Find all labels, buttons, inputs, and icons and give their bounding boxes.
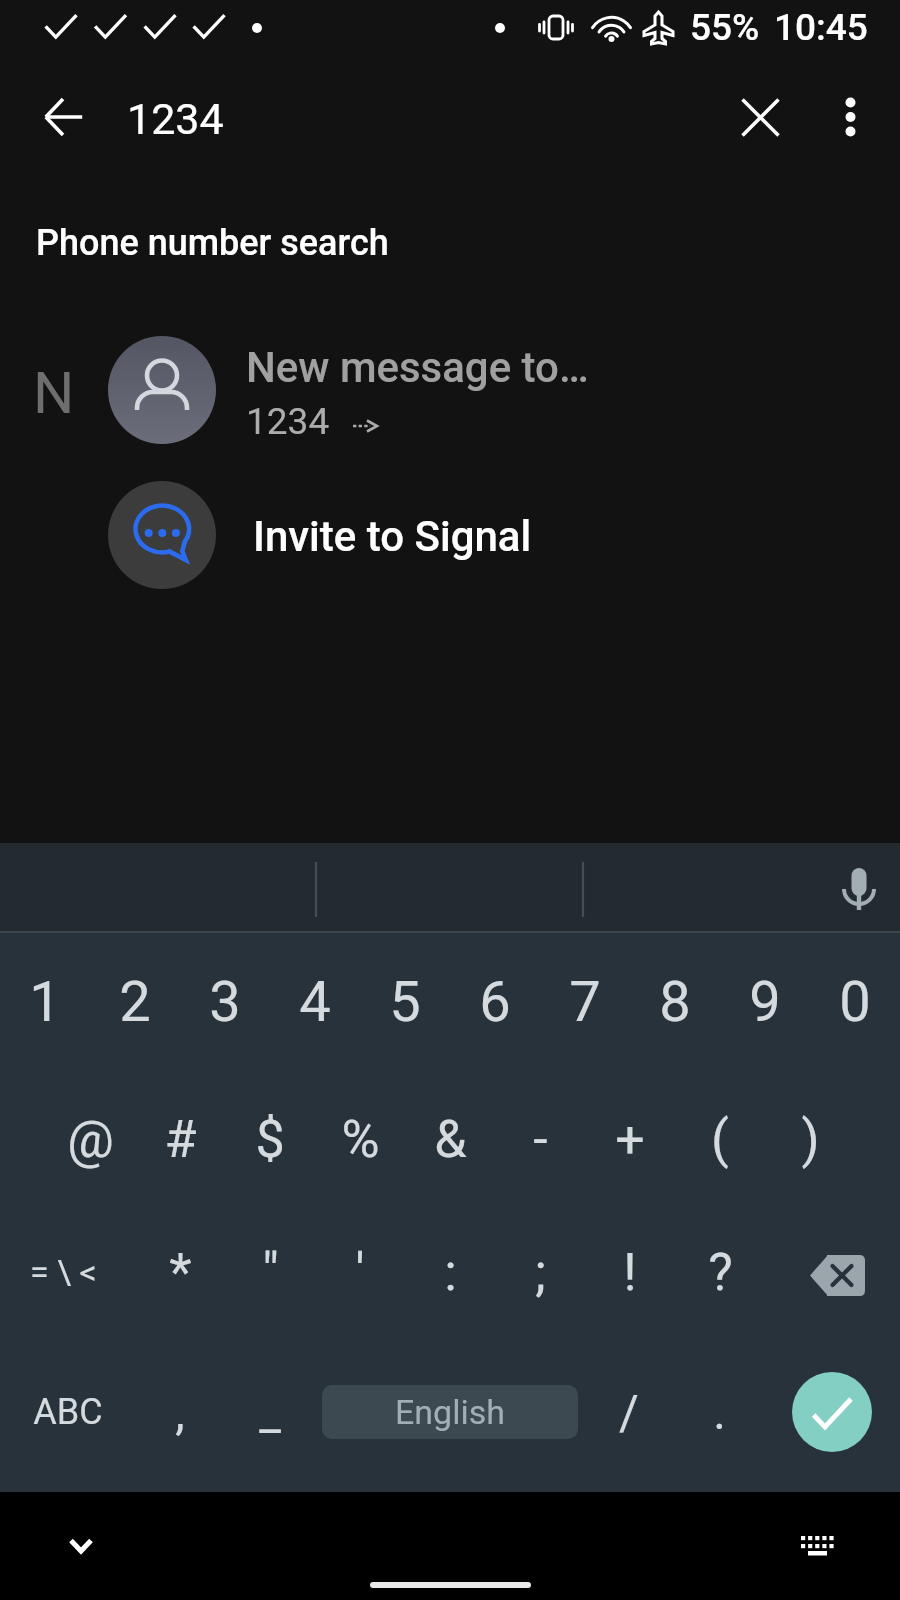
staticText: & bbox=[434, 1109, 467, 1170]
staticText: / bbox=[619, 1384, 639, 1440]
staticText: 0 bbox=[839, 969, 871, 1035]
staticText: 9 bbox=[749, 969, 781, 1035]
staticText: 8 bbox=[659, 969, 691, 1035]
button[interactable]: . bbox=[674, 1368, 764, 1456]
button[interactable]: 2 bbox=[90, 958, 180, 1046]
staticText: 1 bbox=[29, 969, 61, 1035]
button[interactable]: Switch keyboard bbox=[782, 1510, 854, 1582]
button[interactable]: ( bbox=[675, 1095, 765, 1183]
staticText: 1234 bbox=[127, 94, 224, 144]
staticText: % bbox=[341, 1109, 380, 1170]
button[interactable]: , bbox=[135, 1368, 225, 1456]
button[interactable]: Voice input bbox=[827, 856, 891, 920]
button[interactable]: ABC bbox=[23, 1368, 113, 1456]
staticText: * bbox=[169, 1242, 192, 1303]
button[interactable]: Enter bbox=[792, 1372, 872, 1452]
button[interactable]: N bbox=[0, 336, 900, 444]
staticText: Invite to Signal bbox=[253, 512, 532, 561]
staticText: $ bbox=[255, 1109, 285, 1170]
button[interactable]: ' bbox=[315, 1228, 405, 1316]
staticText: ; bbox=[535, 1242, 546, 1303]
button[interactable]: 1 bbox=[0, 958, 90, 1046]
button[interactable]: - bbox=[495, 1095, 585, 1183]
button[interactable]: 3 bbox=[180, 958, 270, 1046]
button[interactable]: & bbox=[405, 1095, 495, 1183]
button[interactable]: 4 bbox=[270, 958, 360, 1046]
staticText: ! bbox=[623, 1242, 637, 1303]
staticText: . bbox=[713, 1384, 726, 1440]
button[interactable]: % bbox=[315, 1095, 405, 1183]
button[interactable]: + bbox=[585, 1095, 675, 1183]
staticText: @ bbox=[67, 1109, 114, 1170]
button[interactable]: Invite to Signal bbox=[0, 481, 900, 589]
staticText: N bbox=[33, 359, 75, 427]
button[interactable]: @ bbox=[45, 1095, 135, 1183]
button[interactable]: 0 bbox=[810, 958, 900, 1046]
button[interactable]: $ bbox=[225, 1095, 315, 1183]
button[interactable]: ! bbox=[585, 1228, 675, 1316]
button[interactable]: ? bbox=[675, 1228, 765, 1316]
button[interactable]: ; bbox=[495, 1228, 585, 1316]
staticText: ? bbox=[708, 1242, 733, 1303]
button[interactable]: : bbox=[405, 1228, 495, 1316]
button[interactable]: 7 bbox=[540, 958, 630, 1046]
staticText: 1234 bbox=[246, 400, 330, 443]
staticText: # bbox=[164, 1109, 197, 1170]
staticText: + bbox=[615, 1109, 645, 1170]
button[interactable]: 6 bbox=[450, 958, 540, 1046]
staticText: , bbox=[175, 1384, 185, 1440]
staticText: ( bbox=[711, 1109, 729, 1170]
button[interactable]: English bbox=[322, 1385, 578, 1439]
button[interactable]: * bbox=[135, 1228, 225, 1316]
button[interactable]: _ bbox=[225, 1368, 315, 1456]
staticText: 7 bbox=[569, 969, 601, 1035]
button[interactable]: # bbox=[135, 1095, 225, 1183]
button[interactable]: 9 bbox=[720, 958, 810, 1046]
staticText: 6 bbox=[479, 969, 511, 1035]
button[interactable]: 5 bbox=[360, 958, 450, 1046]
button[interactable]: Navigate up bbox=[20, 73, 108, 161]
staticText: 4 bbox=[299, 969, 331, 1035]
staticText: 10:45 bbox=[774, 6, 868, 49]
button[interactable]: ) bbox=[765, 1095, 855, 1183]
button[interactable]: / bbox=[584, 1368, 674, 1456]
staticText: " bbox=[262, 1242, 279, 1303]
staticText: 3 bbox=[209, 969, 241, 1035]
staticText: English bbox=[395, 1392, 506, 1432]
staticText: : bbox=[444, 1242, 457, 1303]
staticText: - bbox=[533, 1109, 548, 1170]
button[interactable]: Backspace bbox=[792, 1235, 882, 1315]
button[interactable]: Clear bbox=[716, 73, 804, 161]
staticText: _ bbox=[259, 1384, 281, 1440]
staticText: ' bbox=[355, 1242, 365, 1303]
button[interactable]: 8 bbox=[630, 958, 720, 1046]
staticText: = \ < bbox=[30, 1252, 97, 1292]
staticText: ) bbox=[801, 1109, 820, 1170]
button[interactable]: More options bbox=[806, 73, 894, 161]
staticText: 55% bbox=[690, 6, 760, 49]
staticText: ABC bbox=[33, 1391, 103, 1433]
staticText: Phone number search bbox=[36, 222, 389, 264]
button[interactable]: = \ < bbox=[18, 1228, 108, 1316]
button[interactable]: " bbox=[225, 1228, 315, 1316]
staticText: New message to… bbox=[246, 343, 589, 392]
staticText: 2 bbox=[119, 969, 151, 1035]
staticText: 5 bbox=[389, 969, 421, 1035]
button[interactable]: Hide keyboard bbox=[45, 1510, 117, 1582]
